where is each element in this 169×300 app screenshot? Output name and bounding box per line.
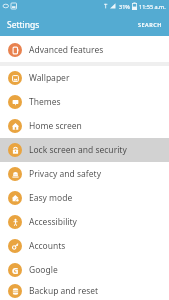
staticText: Settings bbox=[7, 19, 40, 31]
staticText: Home screen bbox=[29, 120, 82, 132]
staticText: Lock screen and security bbox=[29, 144, 127, 156]
staticText: Backup and reset bbox=[29, 285, 99, 297]
staticText: Wallpaper bbox=[29, 72, 70, 84]
staticText: Advanced features bbox=[29, 44, 104, 56]
staticText: Accessibility bbox=[29, 216, 77, 228]
staticText: Google bbox=[29, 264, 58, 276]
staticText: Privacy and safety bbox=[29, 168, 101, 180]
staticText: Easy mode bbox=[29, 192, 73, 204]
staticText: 31% bbox=[119, 3, 130, 10]
staticText: G bbox=[12, 264, 19, 276]
staticText: Themes bbox=[29, 96, 61, 108]
staticText: SEARCH bbox=[138, 21, 162, 28]
staticText: Accounts bbox=[29, 240, 66, 252]
staticText: 11:55 a.m. bbox=[139, 3, 166, 10]
